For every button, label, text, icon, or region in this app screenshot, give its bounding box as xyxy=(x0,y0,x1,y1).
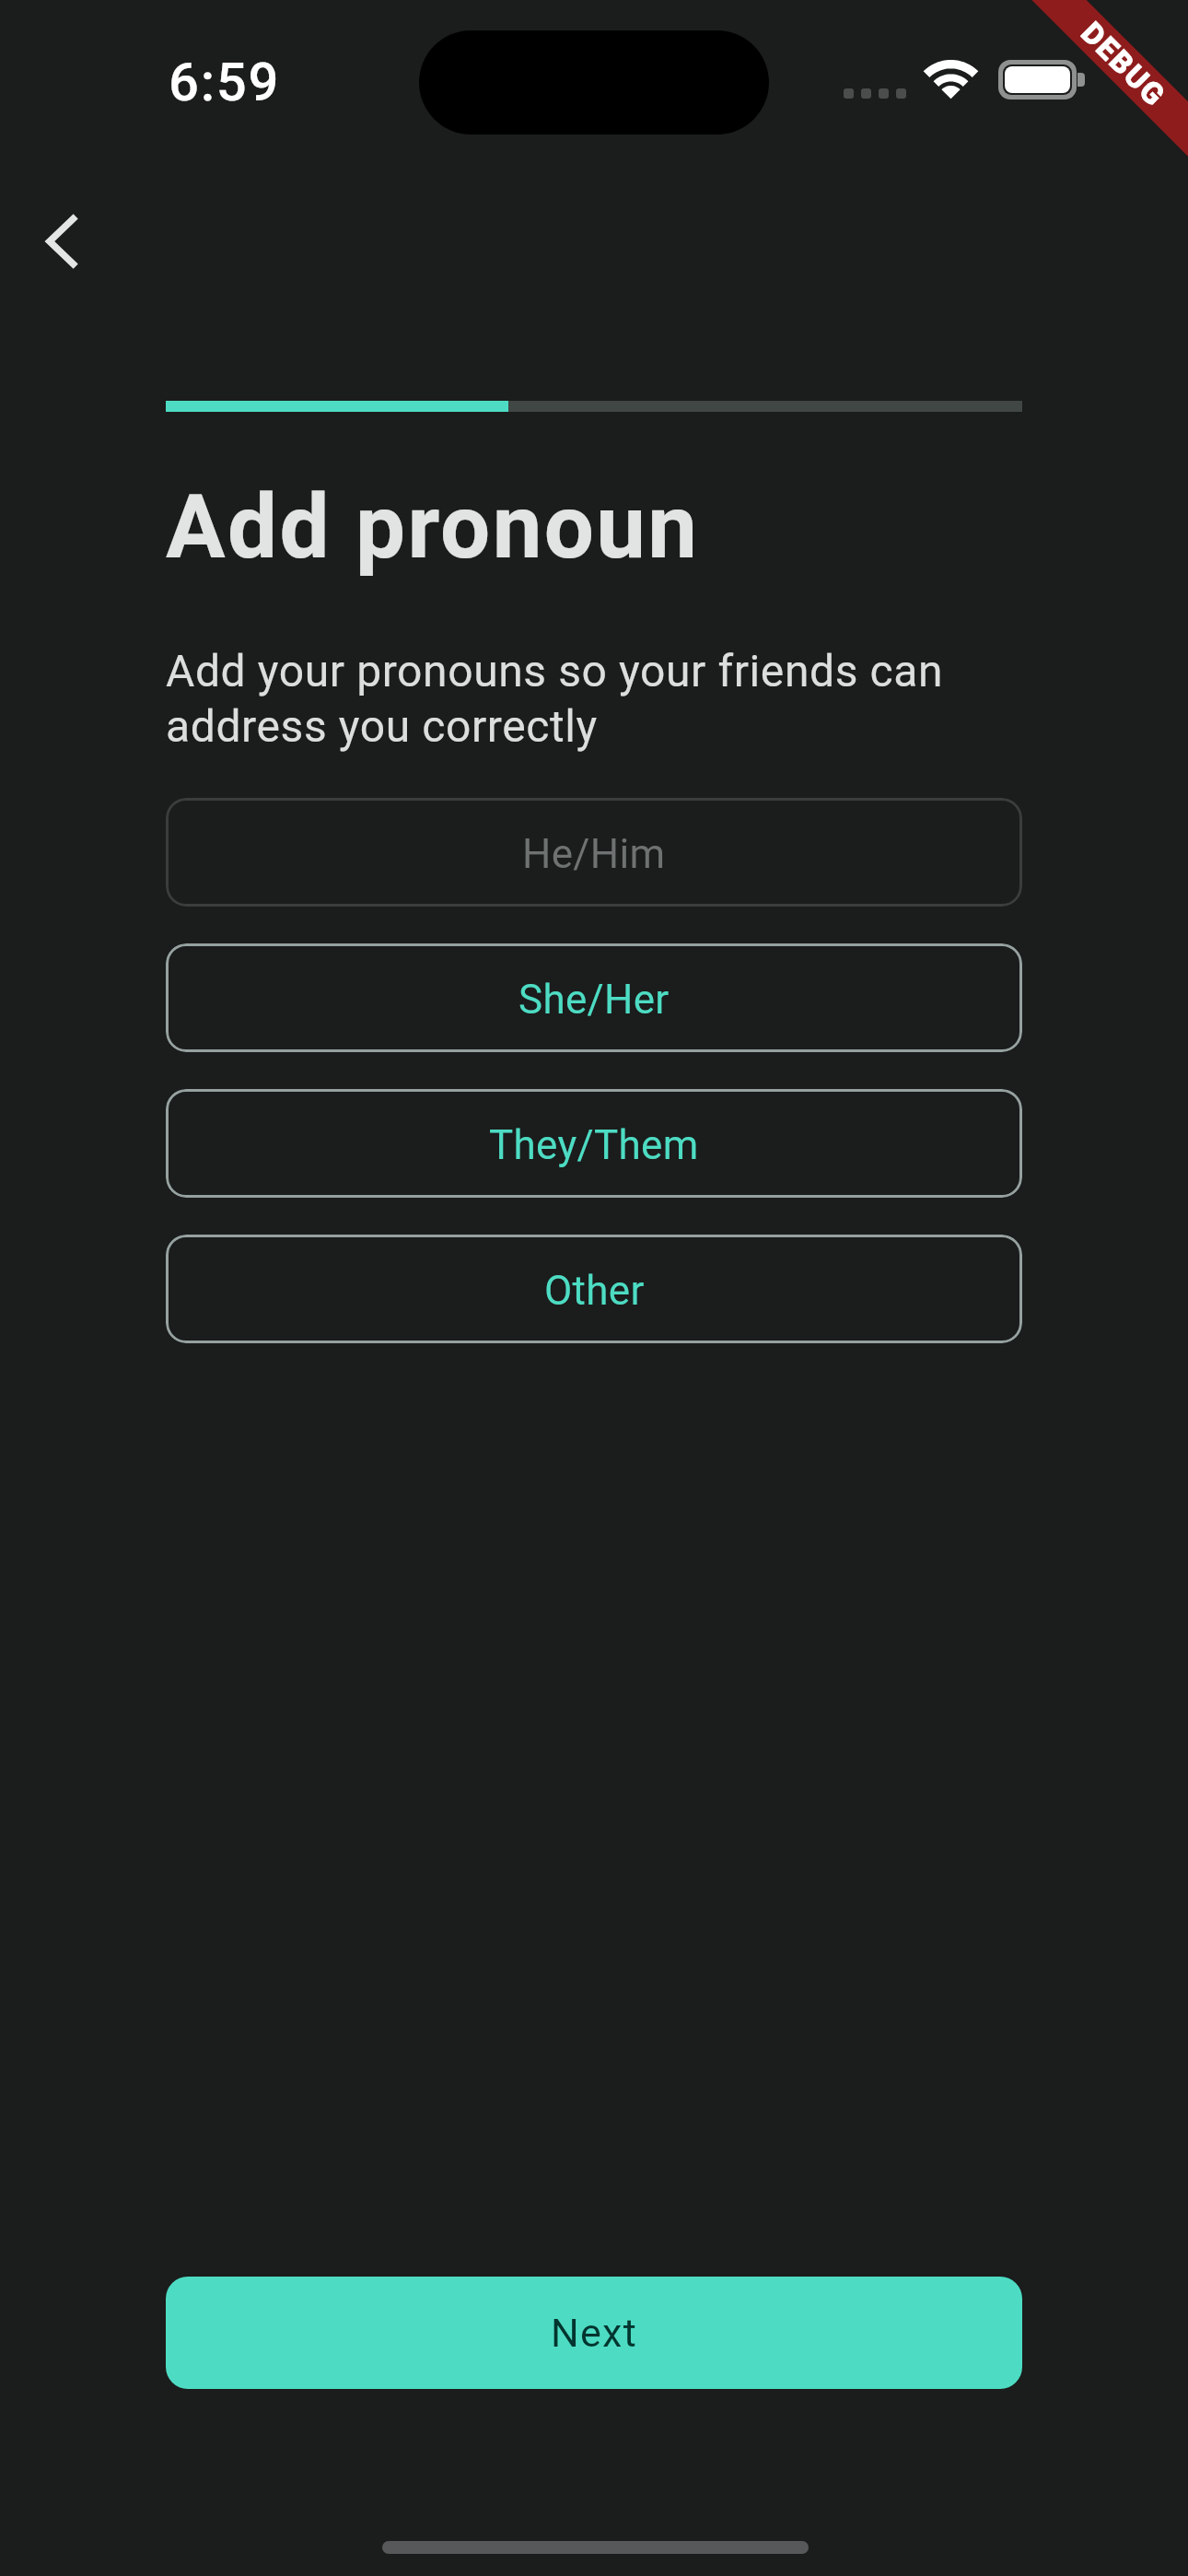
button[interactable]: He/Him xyxy=(166,798,1022,907)
button[interactable]: They/Them xyxy=(166,1089,1022,1198)
staticText: They/Them xyxy=(489,1121,699,1169)
staticText: Other xyxy=(544,1267,645,1315)
button[interactable]: She/Her xyxy=(166,943,1022,1052)
staticText: 6:59 xyxy=(169,51,281,113)
button[interactable]: Back xyxy=(16,186,109,297)
staticText: Add pronoun xyxy=(166,475,700,580)
button[interactable]: Next xyxy=(166,2277,1022,2389)
staticText: She/Her xyxy=(518,976,670,1024)
staticText: Add your pronouns so your friends can ad… xyxy=(166,645,1022,752)
staticText: He/Him xyxy=(522,830,666,878)
staticText: DEBUG xyxy=(1074,15,1173,114)
staticText: Next xyxy=(551,2310,638,2356)
button[interactable]: Other xyxy=(166,1235,1022,1343)
